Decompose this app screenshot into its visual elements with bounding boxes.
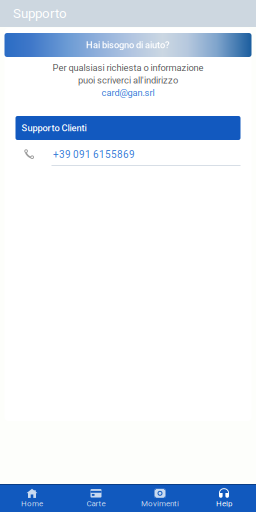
staticText: Supporto Clienti bbox=[21, 122, 86, 133]
button[interactable]: Carte bbox=[64, 485, 128, 512]
staticText: puoi scriverci all'indirizzo bbox=[78, 75, 178, 86]
staticText: Help bbox=[216, 499, 232, 508]
staticText: +39 091 6155869 bbox=[53, 149, 135, 160]
button[interactable]: Help bbox=[192, 485, 256, 512]
staticText: Per qualsiasi richiesta o informazione bbox=[52, 62, 203, 73]
button[interactable]: Movimenti bbox=[128, 485, 192, 512]
staticText: Supporto bbox=[13, 6, 67, 21]
button[interactable]: +39 091 6155869 bbox=[15, 144, 240, 166]
staticText: card@gan.srl bbox=[101, 87, 154, 98]
button[interactable]: card@gan.srl bbox=[101, 86, 154, 99]
staticText: Home bbox=[21, 499, 43, 508]
staticText: Hai bisogno di aiuto? bbox=[86, 39, 170, 50]
button[interactable]: Home bbox=[0, 485, 64, 512]
staticText: Carte bbox=[86, 499, 105, 508]
staticText: Movimenti bbox=[141, 499, 179, 508]
